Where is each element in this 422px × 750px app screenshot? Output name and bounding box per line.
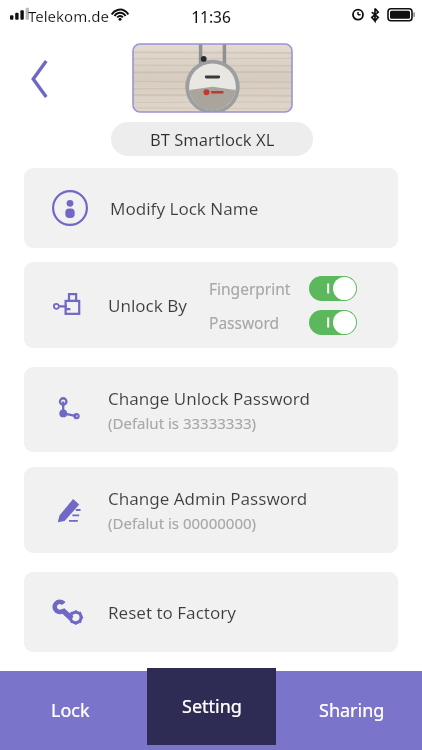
staticText: Reset to Factory <box>108 601 236 624</box>
button[interactable]: Unlock By <box>24 262 398 348</box>
button[interactable]: Change Unlock Password <box>24 367 398 452</box>
staticText: BT Smartlock XL <box>150 128 275 150</box>
staticText: Telekom.de <box>28 6 109 26</box>
button[interactable]: Fingerprint <box>309 276 357 301</box>
button[interactable]: Setting <box>147 668 276 745</box>
staticText: Fingerprint <box>209 278 303 299</box>
staticText: Password <box>209 312 303 333</box>
button[interactable]: Lock photo <box>133 44 292 112</box>
button[interactable]: Reset to Factory <box>24 572 398 652</box>
staticText: Setting <box>182 694 242 719</box>
staticText: Modify Lock Name <box>110 197 259 220</box>
button[interactable]: BT Smartlock XL <box>111 122 313 156</box>
button[interactable]: Lock <box>0 671 140 750</box>
staticText: (Defalut is 33333333) <box>108 413 257 433</box>
staticText: Change Admin Password <box>108 487 308 510</box>
button[interactable]: Password <box>309 310 357 335</box>
staticText: Change Unlock Password <box>108 387 310 410</box>
button[interactable]: Change Admin Password <box>24 467 398 553</box>
button[interactable]: Sharing <box>281 671 422 750</box>
staticText: (Defalut is 00000000) <box>108 513 257 533</box>
staticText: 11:36 <box>191 6 231 27</box>
button[interactable]: Modify Lock Name <box>24 168 398 248</box>
button[interactable]: Back <box>14 52 66 104</box>
staticText: Unlock By <box>108 294 187 317</box>
staticText: Lock <box>51 698 90 723</box>
staticText: Sharing <box>319 698 385 723</box>
